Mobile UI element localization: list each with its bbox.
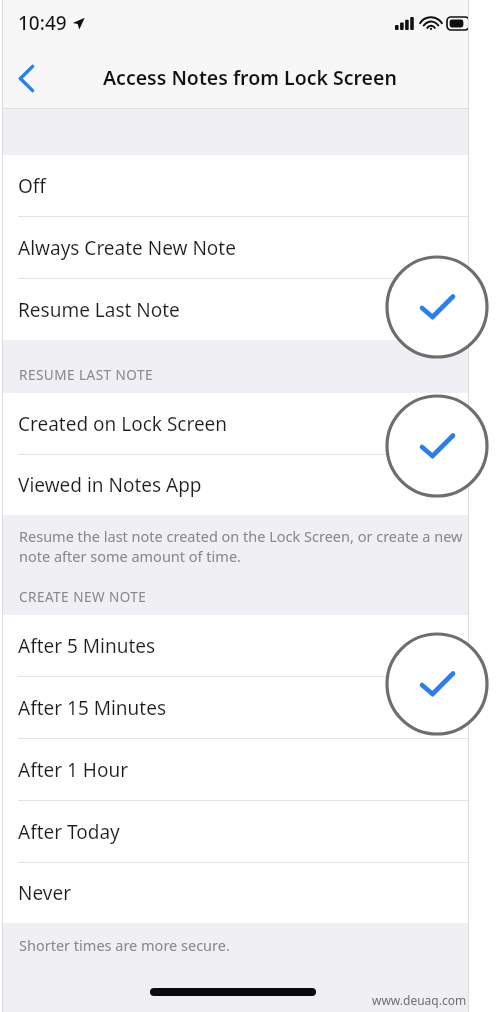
staticText: Shorter times are more secure.: [19, 935, 230, 955]
staticText: Always Create New Note: [18, 235, 236, 261]
button[interactable]: Always Create New Note: [0, 217, 500, 278]
button[interactable]: Resume Last Note: [0, 279, 500, 340]
staticText: Access Notes from Lock Screen: [103, 64, 397, 91]
button[interactable]: Off: [0, 155, 500, 216]
staticText: Created on Lock Screen: [18, 411, 228, 437]
staticText: Resume Last Note: [18, 297, 180, 323]
staticText: 10:49: [18, 10, 67, 36]
button[interactable]: Created on Lock Screen: [0, 393, 500, 454]
staticText: RESUME LAST NOTE: [19, 366, 153, 384]
button[interactable]: After 5 Minutes: [0, 615, 500, 676]
staticText: CREATE NEW NOTE: [19, 588, 147, 606]
staticText: Off: [18, 173, 46, 199]
button[interactable]: Back: [0, 48, 52, 108]
button[interactable]: After 1 Hour: [0, 739, 500, 800]
staticText: Never: [18, 880, 71, 906]
button[interactable]: Never: [0, 863, 500, 923]
button[interactable]: After Today: [0, 801, 500, 862]
staticText: After 5 Minutes: [18, 633, 156, 659]
button[interactable]: Viewed in Notes App: [0, 455, 500, 515]
staticText: After Today: [18, 819, 120, 845]
staticText: Viewed in Notes App: [18, 472, 202, 498]
staticText: www.deuaq.com: [372, 992, 467, 1008]
button[interactable]: After 15 Minutes: [0, 677, 500, 738]
staticText: Resume the last note created on the Lock…: [19, 526, 466, 567]
staticText: After 15 Minutes: [18, 695, 167, 721]
staticText: After 1 Hour: [18, 757, 129, 783]
